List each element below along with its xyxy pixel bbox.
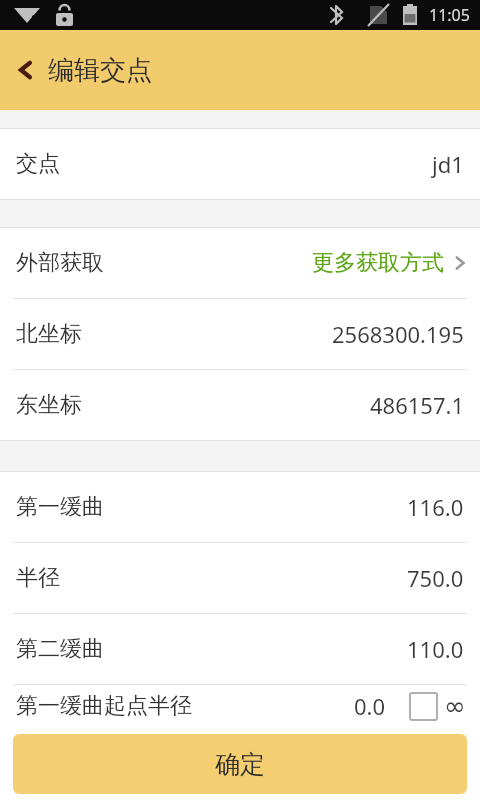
staticText: 486157.1	[370, 390, 464, 420]
staticText: 编辑交点	[48, 54, 152, 87]
staticText: 确定	[215, 749, 265, 780]
button[interactable]: 外部获取	[0, 228, 480, 298]
button[interactable]: Back	[8, 52, 44, 88]
button[interactable]: Infinity checkbox	[408, 691, 438, 721]
staticText: ∞	[444, 691, 466, 721]
staticText: 交点	[16, 150, 60, 178]
staticText: 2568300.195	[332, 319, 464, 349]
staticText: 外部获取	[16, 249, 104, 277]
staticText: 东坐标	[16, 391, 82, 419]
staticText: 北坐标	[16, 320, 82, 348]
button[interactable]: 半径	[0, 543, 480, 613]
button[interactable]: 北坐标	[0, 299, 480, 369]
staticText: 11:05	[429, 4, 470, 26]
staticText: 第二缓曲	[16, 635, 104, 663]
staticText: 116.0	[407, 492, 464, 522]
staticText: 第一缓曲起点半径	[16, 692, 192, 720]
staticText: 750.0	[407, 563, 464, 593]
staticText: 0.0	[354, 691, 386, 721]
staticText: jd1	[432, 149, 464, 179]
button[interactable]: 东坐标	[0, 370, 480, 440]
button[interactable]: 第二缓曲	[0, 614, 480, 684]
button[interactable]: 确定	[13, 734, 467, 794]
staticText: 110.0	[407, 634, 464, 664]
button[interactable]: 第一缓曲	[0, 472, 480, 542]
staticText: 更多获取方式	[312, 249, 444, 277]
staticText: 第一缓曲	[16, 493, 104, 521]
button[interactable]: 交点	[0, 129, 480, 199]
staticText: 半径	[16, 564, 60, 592]
